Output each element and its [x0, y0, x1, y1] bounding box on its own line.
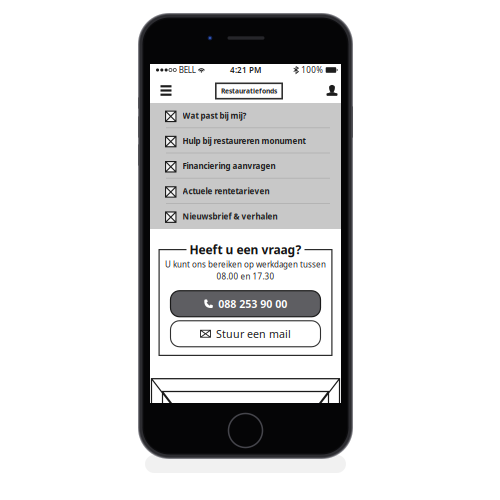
- button[interactable]: Wat past bij mij?: [150, 103, 341, 128]
- staticText: 4:21 PM: [230, 65, 261, 75]
- staticText: Heeft u een vraag?: [189, 242, 301, 257]
- button[interactable]: Hulp bij restaureren monument: [150, 128, 341, 153]
- staticText: 088 253 90 00: [218, 297, 287, 311]
- staticText: 100%: [301, 65, 323, 75]
- button[interactable]: Financiering aanvragen: [150, 153, 341, 179]
- button[interactable]: Menu: [155, 75, 177, 104]
- staticText: U kunt ons bereiken op werkdagen tussen: [165, 259, 326, 270]
- staticText: 08.00 en 17.30: [216, 271, 274, 282]
- staticText: Actuele rentetarieven: [182, 186, 269, 196]
- button[interactable]: Actuele rentetarieven: [150, 179, 341, 204]
- staticText: Wat past bij mij?: [182, 110, 246, 121]
- staticText: Nieuwsbrief & verhalen: [182, 211, 277, 222]
- staticText: Stuur een mail: [216, 327, 291, 341]
- staticText: Hulp bij restaureren monument: [182, 135, 305, 146]
- button[interactable]: Stuur een mail: [170, 321, 320, 347]
- button[interactable]: Restauratiefonds: [215, 79, 283, 99]
- staticText: Restauratiefonds: [221, 87, 277, 95]
- button[interactable]: Nieuwsbrief & verhalen: [150, 204, 341, 229]
- button[interactable]: 088 253 90 00: [170, 291, 320, 317]
- staticText: Financiering aanvragen: [182, 161, 275, 171]
- button[interactable]: Account: [321, 75, 343, 103]
- staticText: BELL: [179, 65, 196, 75]
